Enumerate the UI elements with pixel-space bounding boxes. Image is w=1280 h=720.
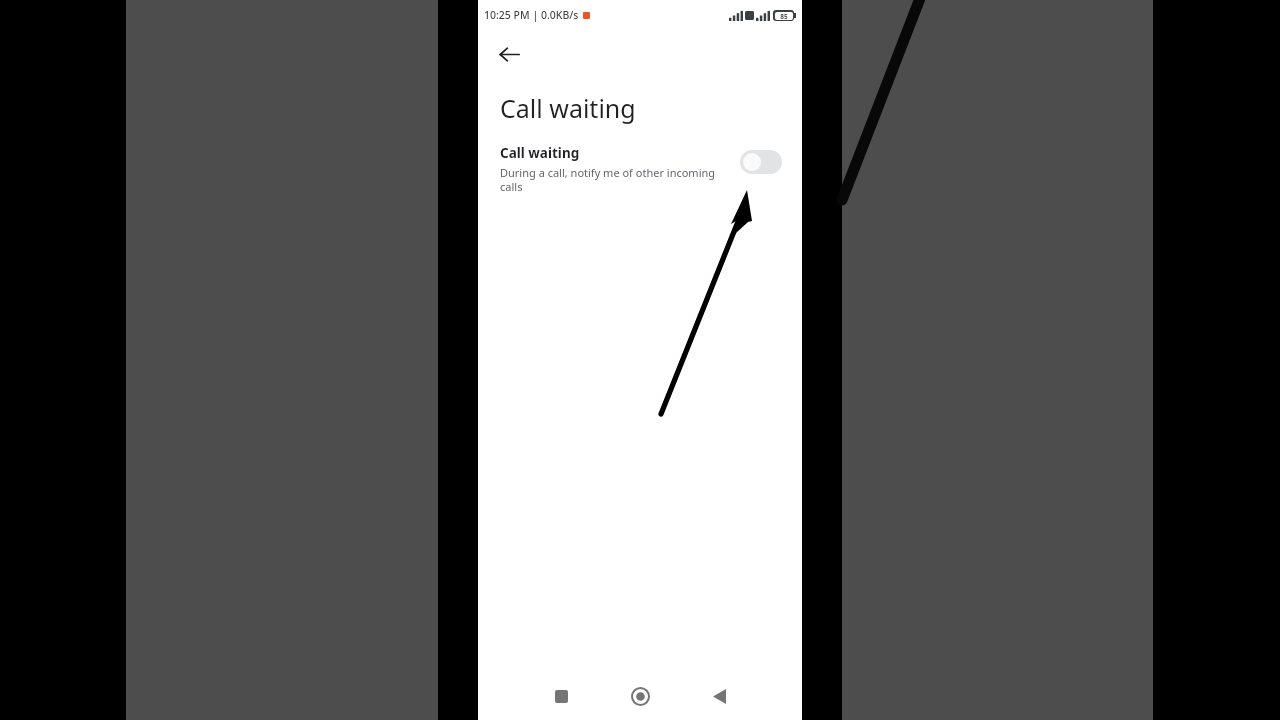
button[interactable]: Recent apps — [540, 675, 582, 717]
staticText: Call waiting — [500, 144, 580, 162]
button[interactable]: Call waiting — [478, 138, 802, 208]
staticText: During a call, notify me of other incomi… — [500, 165, 726, 194]
staticText: 85 — [780, 12, 788, 20]
button[interactable]: Call waiting toggle — [740, 150, 782, 174]
button[interactable]: Back — [698, 675, 740, 717]
button[interactable]: Back — [488, 33, 530, 75]
staticText: Call waiting — [500, 91, 636, 125]
staticText: 10:25 PM | 0.0KB/s — [484, 8, 579, 22]
button[interactable]: Home — [619, 675, 661, 717]
